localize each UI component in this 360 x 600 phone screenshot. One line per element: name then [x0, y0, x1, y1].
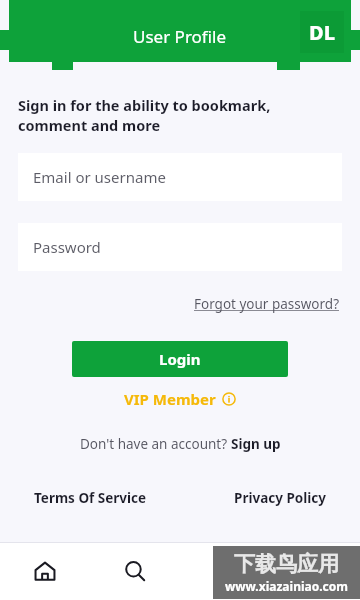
- button[interactable]: Password: [18, 223, 342, 271]
- button[interactable]: Search: [90, 542, 180, 600]
- staticText: DL: [309, 19, 336, 46]
- button[interactable]: Forgot your password?: [192, 291, 342, 317]
- staticText: www.xiazainiao.com: [225, 578, 348, 594]
- button[interactable]: Home: [0, 542, 90, 600]
- button[interactable]: DL logo: [300, 11, 344, 53]
- button[interactable]: Terms Of Service: [30, 485, 151, 511]
- button[interactable]: Don't have an account?: [76, 431, 285, 457]
- staticText: VIP Member: [124, 389, 216, 409]
- staticText: Sign up: [231, 435, 281, 453]
- staticText: Sign in for the ability to bookmark, com…: [18, 95, 271, 136]
- button[interactable]: Login: [72, 341, 288, 377]
- button[interactable]: Privacy Policy: [230, 485, 330, 511]
- staticText: 1: [238, 554, 244, 568]
- button[interactable]: Email or username: [18, 153, 342, 201]
- staticText: Password: [33, 237, 101, 257]
- staticText: Email or username: [33, 167, 166, 187]
- staticText: 下载鸟应用: [234, 551, 339, 577]
- staticText: Login: [159, 349, 201, 369]
- button[interactable]: Downloads: [180, 542, 270, 600]
- staticText: User Profile: [133, 25, 227, 48]
- staticText: Don't have an account?: [80, 435, 231, 453]
- button[interactable]: VIP Member: [118, 386, 242, 412]
